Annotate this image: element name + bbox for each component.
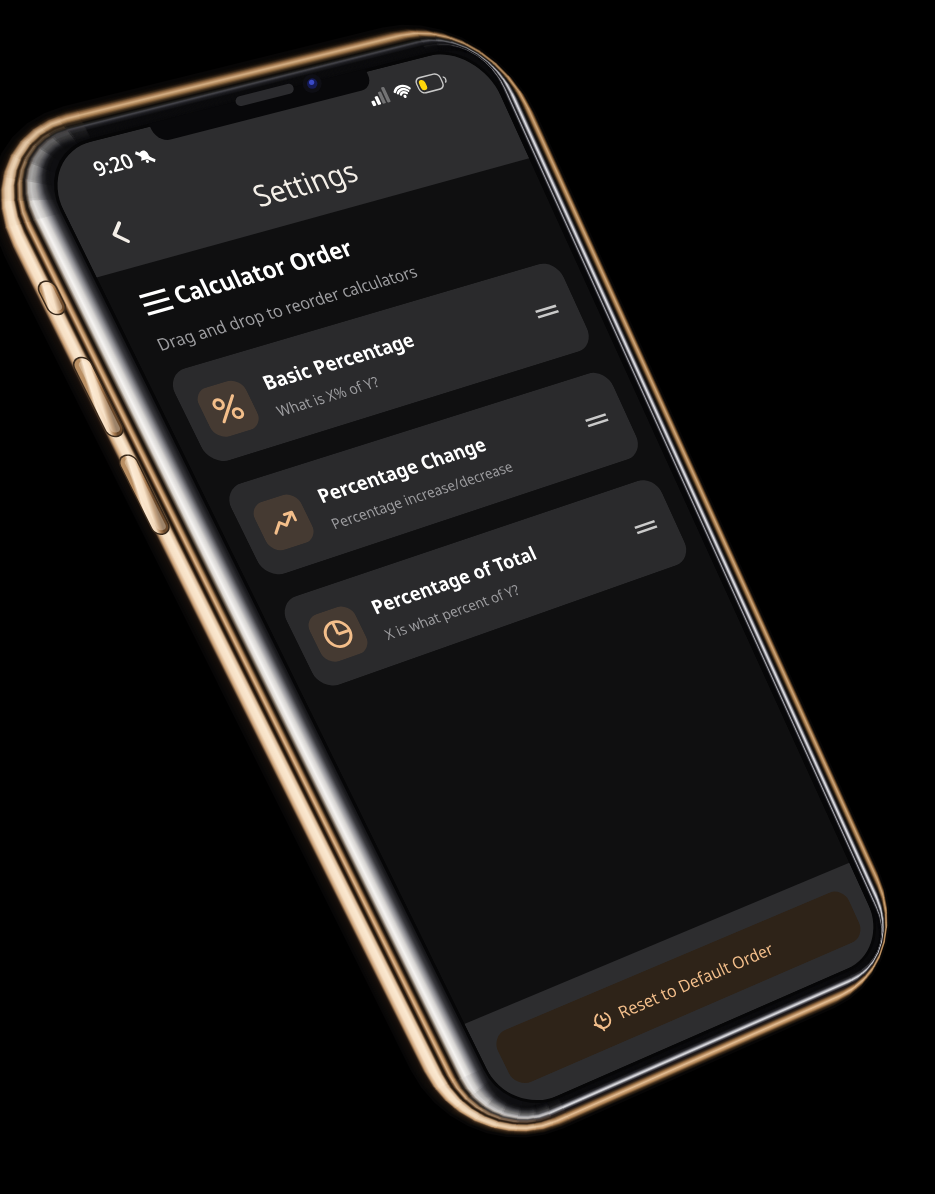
- staticText: Reset to Default Order: [130, 797, 289, 817]
- staticText: Settings: [151, 56, 243, 89]
- staticText: Percentage Change: [88, 304, 244, 326]
- button[interactable]: Percentage of Total: [16, 385, 376, 464]
- button[interactable]: Basic Percentage: [16, 187, 376, 266]
- staticText: X is what percent of Y?: [88, 430, 215, 446]
- staticText: What is X% of Y?: [88, 232, 180, 248]
- staticText: Calculator Order: [52, 118, 209, 144]
- button[interactable]: Reset to Default Order: [16, 782, 377, 832]
- staticText: Percentage of Total: [88, 403, 243, 425]
- staticText: Percentage increase/decrease: [88, 331, 258, 347]
- staticText: Drag and drop to reorder calculators: [21, 155, 254, 173]
- button[interactable]: Percentage Change: [16, 286, 376, 365]
- staticText: Basic Percentage: [88, 205, 225, 227]
